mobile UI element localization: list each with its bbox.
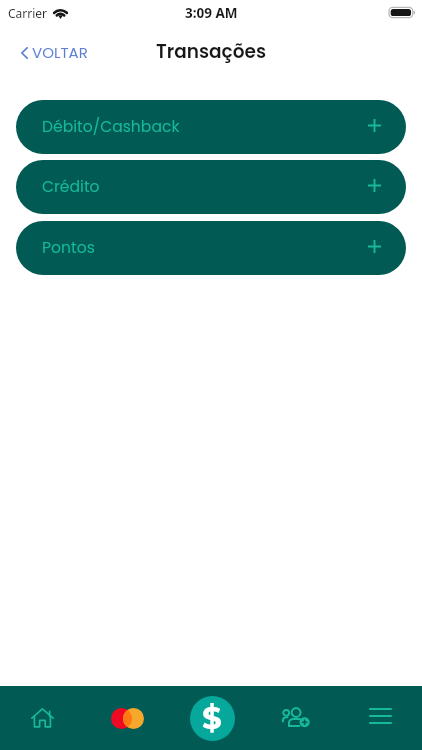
staticText: Transações — [156, 39, 266, 65]
staticText: 3:09 AM — [185, 4, 238, 22]
button[interactable]: Pontos — [16, 221, 406, 275]
button[interactable]: Home — [0, 686, 85, 750]
staticText: $ — [202, 699, 222, 737]
button[interactable]: VOLTAR — [15, 36, 94, 69]
button[interactable]: Cards — [85, 686, 170, 750]
staticText: Pontos — [42, 237, 95, 259]
button[interactable]: Débito/Cashback — [16, 100, 406, 154]
staticText: Débito/Cashback — [42, 116, 180, 138]
button[interactable]: Crédito — [16, 160, 406, 214]
button[interactable]: Menu — [338, 686, 422, 750]
staticText: Crédito — [42, 176, 100, 198]
staticText: Carrier — [8, 5, 48, 21]
staticText: VOLTAR — [32, 42, 88, 63]
button[interactable]: Money — [170, 686, 254, 750]
button[interactable]: Add contact — [254, 686, 338, 750]
